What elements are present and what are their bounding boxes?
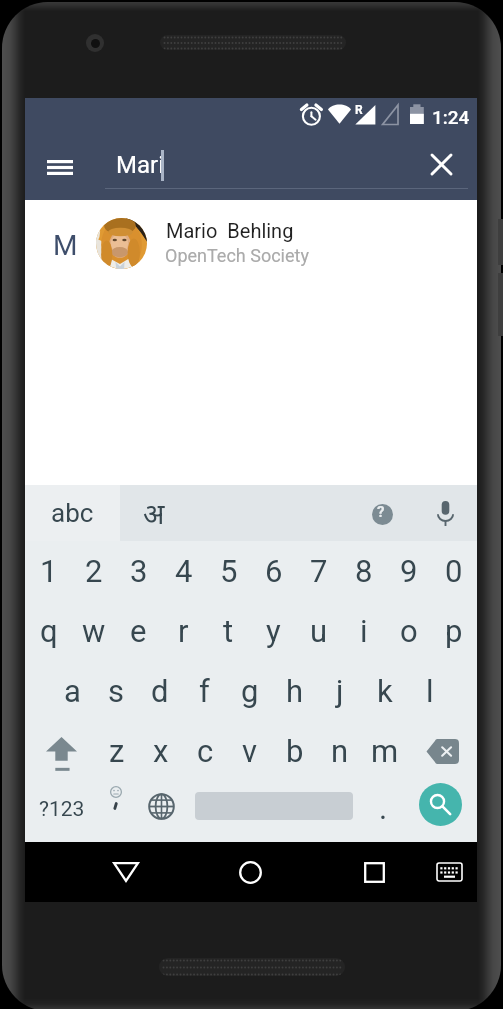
staticText: n [331, 733, 349, 769]
button[interactable]: s [94, 661, 138, 721]
button[interactable]: k [362, 661, 407, 721]
button[interactable]: p [431, 601, 476, 661]
staticText: e [130, 613, 147, 649]
staticText: 6 [265, 553, 283, 589]
staticText: j [336, 673, 344, 709]
staticText: h [286, 673, 304, 709]
button[interactable]: 0 [431, 541, 476, 601]
staticText: OpenTech Society [165, 245, 309, 266]
button[interactable]: Hide keyboard [424, 847, 474, 897]
staticText: abc [51, 498, 94, 528]
button[interactable]: Voice input [425, 493, 465, 533]
staticText: r [178, 613, 189, 649]
button[interactable]: l [407, 661, 452, 721]
staticText: . [379, 790, 388, 826]
staticText: ?123 [39, 797, 85, 822]
button[interactable]: Search [419, 783, 462, 826]
button[interactable]: 3 [116, 541, 161, 601]
button[interactable]: Shift [33, 731, 89, 775]
staticText: M [53, 229, 78, 262]
button[interactable]: Recent apps [344, 847, 404, 897]
button[interactable]: w [71, 601, 116, 661]
staticText: s [108, 673, 124, 709]
button[interactable]: n [317, 721, 362, 781]
button[interactable]: j [317, 661, 362, 721]
button[interactable]: Backspace [415, 726, 469, 776]
button[interactable]: b [272, 721, 317, 781]
button[interactable]: Emoji [96, 783, 136, 823]
button[interactable]: e [116, 601, 161, 661]
button[interactable]: 6 [251, 541, 296, 601]
staticText: w [82, 613, 106, 649]
button[interactable]: Open navigation menu [35, 142, 85, 192]
staticText: 8 [355, 553, 373, 589]
button[interactable]: 9 [386, 541, 431, 601]
button[interactable]: . [365, 783, 401, 833]
staticText: 9 [400, 553, 418, 589]
staticText: l [426, 673, 434, 709]
staticText: o [400, 613, 418, 649]
staticText: a [64, 673, 81, 709]
button[interactable]: z [95, 721, 139, 781]
staticText: g [241, 673, 259, 709]
button[interactable]: x [139, 721, 183, 781]
button[interactable]: f [182, 661, 227, 721]
button[interactable]: u [296, 601, 341, 661]
button[interactable]: c [183, 721, 227, 781]
button[interactable]: 5 [206, 541, 251, 601]
staticText: 5 [220, 553, 238, 589]
button[interactable]: 2 [71, 541, 116, 601]
button[interactable]: a [50, 661, 94, 721]
staticText: Mari [116, 151, 164, 179]
staticText: v [242, 733, 258, 769]
button[interactable]: q [26, 601, 71, 661]
button[interactable]: g [227, 661, 272, 721]
button[interactable]: M [25, 200, 477, 288]
staticText: p [445, 613, 463, 649]
staticText: q [40, 613, 58, 649]
staticText: c [197, 733, 214, 769]
button[interactable]: abc [25, 485, 120, 541]
button[interactable]: m [362, 721, 407, 781]
staticText: z [109, 733, 125, 769]
button[interactable]: Change keyboard language [141, 786, 181, 826]
staticText: y [266, 613, 281, 649]
button[interactable]: 7 [296, 541, 341, 601]
staticText: 1 [40, 553, 58, 589]
button[interactable]: Back [96, 847, 156, 897]
staticText: R [355, 103, 363, 117]
staticText: b [286, 733, 304, 769]
staticText: Mario Behling [166, 219, 294, 242]
button[interactable]: i [341, 601, 386, 661]
button[interactable]: r [161, 601, 206, 661]
staticText: 0 [445, 553, 463, 589]
button[interactable]: Clear search [417, 140, 466, 189]
button[interactable]: y [251, 601, 296, 661]
button[interactable]: Help [362, 494, 402, 534]
staticText: x [153, 733, 169, 769]
button[interactable]: Home [220, 847, 280, 897]
staticText: 4 [175, 553, 193, 589]
button[interactable]: o [386, 601, 431, 661]
button[interactable]: 1 [26, 541, 71, 601]
staticText: k [377, 673, 393, 709]
staticText: अ [143, 494, 165, 532]
button[interactable]: h [272, 661, 317, 721]
button[interactable]: d [138, 661, 182, 721]
button[interactable]: 8 [341, 541, 386, 601]
button[interactable]: 4 [161, 541, 206, 601]
staticText: i [360, 613, 368, 649]
staticText: 2 [85, 553, 103, 589]
button[interactable]: अ [120, 485, 477, 541]
button[interactable]: t [206, 601, 251, 661]
staticText: t [223, 613, 234, 649]
staticText: ? [377, 503, 385, 521]
staticText: m [371, 733, 399, 769]
staticText: 3 [130, 553, 148, 589]
staticText: 1:24 [432, 106, 470, 128]
staticText: f [199, 673, 210, 709]
staticText: 7 [310, 553, 328, 589]
button[interactable]: v [227, 721, 272, 781]
button[interactable]: Space [185, 783, 362, 829]
button[interactable]: ?123 [33, 784, 91, 834]
